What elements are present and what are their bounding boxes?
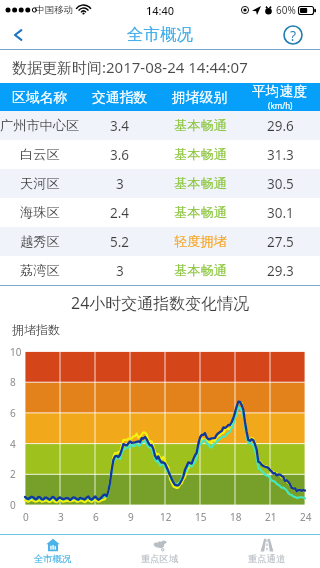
staticText: 拥堵指数 (12, 322, 60, 337)
staticText: 天河区 (20, 175, 60, 192)
staticText: 广州市中心区 (0, 117, 80, 134)
staticText: 29.3 (267, 262, 294, 280)
staticText: 24小时交通指数变化情况 (71, 292, 250, 314)
staticText: 全市概况 (127, 24, 193, 45)
staticText: 3 (116, 262, 124, 280)
button[interactable]: 越秀区 (0, 227, 320, 256)
staticText: 2.4 (110, 204, 130, 222)
button[interactable]: 全市概况 (0, 535, 106, 568)
staticText: 31.3 (267, 146, 294, 164)
button[interactable]: 白云区 (0, 140, 320, 169)
staticText: (km/h) (268, 100, 293, 111)
staticText: 越秀区 (20, 233, 60, 250)
staticText: 6 (93, 510, 99, 524)
staticText: 数据更新时间:2017-08-24 14:44:07 (12, 57, 248, 77)
staticText: 2 (10, 467, 16, 481)
button[interactable]: Help (277, 20, 320, 49)
staticText: 拥堵级别 (172, 89, 228, 106)
staticText: 区域名称 (12, 89, 68, 106)
staticText: 24 (300, 510, 312, 524)
staticText: 29.6 (267, 117, 294, 135)
staticText: 3.4 (110, 117, 130, 135)
staticText: 基本畅通 (174, 175, 227, 192)
staticText: 30.5 (267, 175, 294, 193)
staticText: 3 (116, 175, 124, 193)
staticText: 8 (10, 375, 16, 389)
staticText: 18 (230, 510, 242, 524)
staticText: 3 (58, 510, 64, 524)
button[interactable]: 重点通道 (213, 535, 320, 568)
button[interactable]: 海珠区 (0, 198, 320, 227)
staticText: 0 (23, 510, 29, 524)
staticText: 60% (276, 3, 296, 17)
staticText: 5.2 (110, 233, 130, 251)
staticText: 重点区域 (141, 553, 179, 565)
staticText: 基本畅通 (174, 262, 227, 279)
button[interactable]: 天河区 (0, 169, 320, 198)
staticText: 海珠区 (20, 204, 60, 221)
staticText: 全市概况 (34, 553, 72, 565)
button[interactable]: 重点区域 (106, 535, 213, 568)
staticText: 12 (160, 510, 172, 524)
button[interactable]: Back (0, 20, 40, 49)
staticText: 14:40 (146, 3, 175, 18)
staticText: 基本畅通 (174, 117, 227, 134)
staticText: 21 (265, 510, 277, 524)
staticText: 27.5 (267, 233, 294, 251)
staticText: 轻度拥堵 (174, 233, 227, 250)
staticText: 重点通道 (248, 553, 286, 565)
staticText: 0 (10, 498, 16, 512)
button[interactable]: 荔湾区 (0, 256, 320, 285)
staticText: 中国移动 (35, 4, 73, 16)
button[interactable]: 广州市中心区 (0, 111, 320, 140)
staticText: 荔湾区 (20, 262, 60, 279)
staticText: 4 (10, 437, 16, 451)
staticText: 6 (10, 406, 16, 420)
staticText: 10 (10, 345, 22, 359)
staticText: 基本畅通 (174, 146, 227, 163)
staticText: 基本畅通 (174, 204, 227, 221)
staticText: 交通指数 (92, 89, 148, 106)
staticText: 30.1 (267, 204, 294, 222)
staticText: 白云区 (20, 146, 60, 163)
staticText: ? (290, 26, 297, 45)
staticText: 3.6 (110, 146, 130, 164)
staticText: 9 (128, 510, 134, 524)
staticText: 平均速度 (252, 83, 308, 100)
staticText: 15 (195, 510, 207, 524)
